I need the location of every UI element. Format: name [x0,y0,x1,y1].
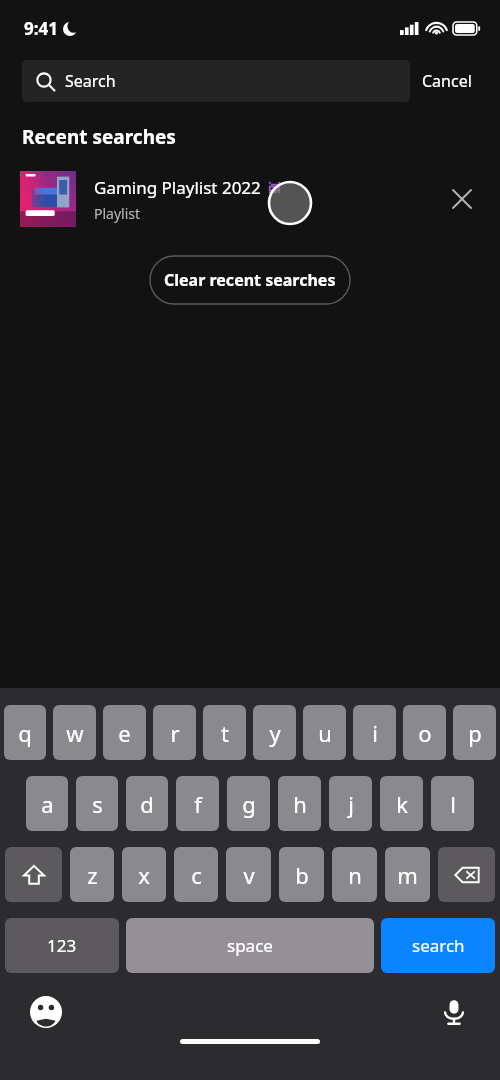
staticText: Clear recent searches [164,269,336,291]
staticText: o [418,718,432,748]
button[interactable]: n [332,847,377,902]
button[interactable]: w [53,705,96,760]
button[interactable]: Backspace [438,847,495,902]
button[interactable]: d [126,776,168,831]
button[interactable]: Remove Gaming Playlist 2022 [442,179,482,219]
staticText: k [396,789,408,819]
button[interactable]: r [153,705,196,760]
staticText: Playlist [94,204,141,223]
staticText: t [221,718,229,748]
button[interactable]: g [227,776,270,831]
staticText: 9:41 [24,17,58,40]
button[interactable]: search [381,918,495,973]
staticText: w [66,718,84,748]
staticText: q [18,718,32,748]
button[interactable]: Voice input [432,990,476,1034]
button[interactable]: Clear recent searches [134,256,366,304]
button[interactable]: c [174,847,218,902]
staticText: c [191,860,202,890]
button[interactable]: m [385,847,430,902]
button[interactable]: a [26,776,68,831]
staticText: r [170,718,180,748]
button[interactable]: p [453,705,496,760]
button[interactable]: Emoji [24,990,68,1034]
button[interactable]: t [203,705,246,760]
button[interactable]: Cancel [410,62,484,100]
button[interactable]: z [70,847,114,902]
staticText: e [118,718,131,748]
button[interactable]: u [303,705,346,760]
staticText: Search [65,70,116,92]
staticText: v [243,860,255,890]
button[interactable]: e [103,705,146,760]
button[interactable]: h [278,776,321,831]
button[interactable]: l [431,776,474,831]
staticText: h [293,789,307,819]
button[interactable]: b [279,847,324,902]
staticText: space [227,934,273,957]
button[interactable]: q [4,705,46,760]
button[interactable]: Search [22,60,410,102]
staticText: b [295,860,309,890]
staticText: search [412,934,465,957]
staticText: d [140,789,154,819]
staticText: a [41,789,54,819]
staticText: f [194,789,202,819]
staticText: Gaming Playlist 2022 [94,176,261,199]
button[interactable]: y [253,705,296,760]
button[interactable]: x [122,847,166,902]
staticText: Cancel [422,70,472,92]
button[interactable]: s [76,776,118,831]
staticText: 123 [47,934,77,957]
staticText: g [242,789,256,819]
button[interactable]: i [353,705,396,760]
button[interactable]: v [226,847,271,902]
staticText: s [92,789,103,819]
staticText: n [348,860,362,890]
staticText: u [318,718,332,748]
staticText: m [397,860,418,890]
staticText: z [87,860,98,890]
staticText: Recent searches [22,124,176,150]
staticText: y [269,718,281,748]
button[interactable]: Shift [5,847,62,902]
staticText: l [450,789,456,819]
button[interactable]: j [329,776,372,831]
button[interactable]: o [403,705,446,760]
staticText: i [372,718,378,748]
button[interactable]: Gaming Playlist 2022 [0,166,500,232]
staticText: x [138,860,150,890]
button[interactable]: space [126,918,374,973]
button[interactable]: k [380,776,423,831]
staticText: j [348,789,354,819]
button[interactable]: 123 [5,918,119,973]
button[interactable]: f [176,776,219,831]
staticText: p [468,718,482,748]
